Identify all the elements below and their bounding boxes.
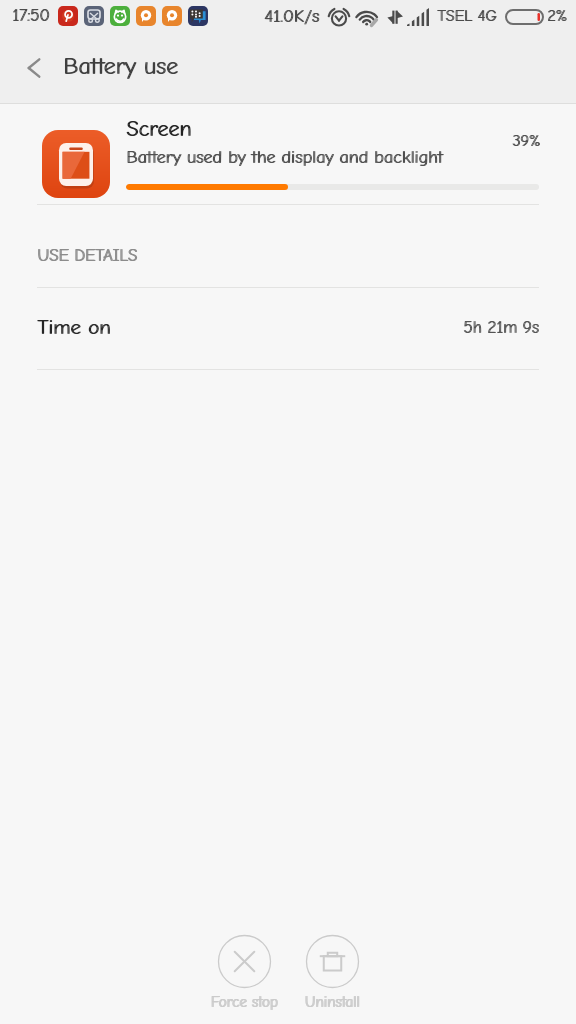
staticText: 2% <box>547 7 567 25</box>
staticText: Battery use <box>64 52 179 80</box>
button[interactable]: Back <box>14 48 54 88</box>
staticText: Screen <box>126 116 192 141</box>
staticText: Battery used by the display and backligh… <box>127 147 444 168</box>
staticText: TSEL 4G <box>437 7 497 25</box>
staticText: 17:50 <box>13 6 51 26</box>
staticText: Screen <box>127 116 193 141</box>
button[interactable]: Time on <box>0 288 576 369</box>
staticText: Uninstall <box>285 993 381 1010</box>
staticText: 39% <box>512 132 541 150</box>
staticText: USE DETAILS <box>38 246 138 266</box>
staticText: Battery use <box>63 52 178 80</box>
staticText: Force stop <box>196 993 292 1010</box>
staticText: 41.0K/s <box>265 6 320 27</box>
staticText: 39% <box>513 132 542 150</box>
staticText: 41.0K/s <box>264 6 319 27</box>
staticText: Uninstall <box>284 993 380 1010</box>
staticText: Time on <box>38 315 112 339</box>
button[interactable]: Uninstall <box>284 935 380 1010</box>
staticText: 5h 21m 9s <box>464 318 540 338</box>
staticText: USE DETAILS <box>37 246 137 266</box>
staticText: Force stop <box>197 993 293 1010</box>
staticText: 2% <box>548 7 568 25</box>
staticText: Battery used by the display and backligh… <box>126 147 443 168</box>
staticText: TSEL 4G <box>438 7 498 25</box>
button[interactable]: Force stop <box>196 935 292 1010</box>
staticText: 17:50 <box>12 6 50 26</box>
staticText: Time on <box>37 315 111 339</box>
staticText: 5h 21m 9s <box>463 318 539 338</box>
